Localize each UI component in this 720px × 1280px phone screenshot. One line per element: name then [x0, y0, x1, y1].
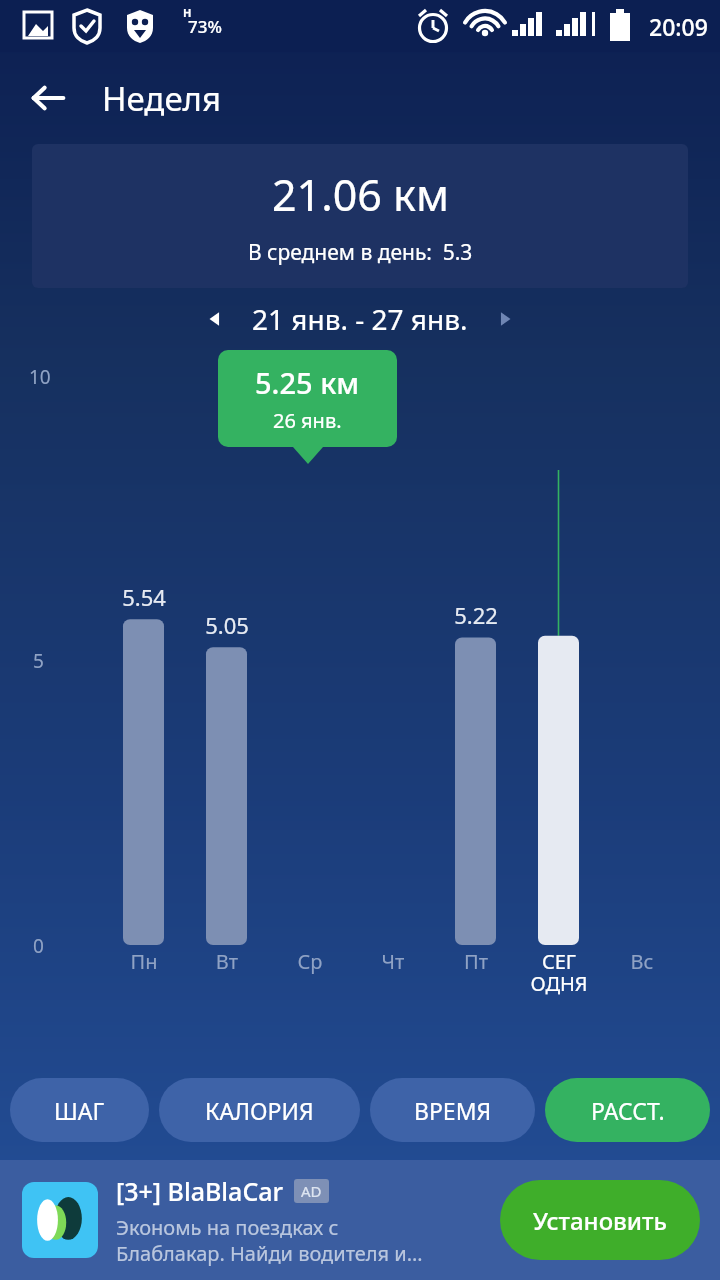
staticText: 0: [33, 933, 44, 959]
button[interactable]: ШАГ: [10, 1078, 149, 1142]
staticText: 10: [29, 364, 51, 390]
staticText: В среднем в день: 5.3: [248, 238, 473, 267]
staticText: Ср: [269, 948, 351, 975]
button[interactable]: 21.06 км: [32, 144, 688, 288]
staticText: Пт: [435, 948, 517, 975]
staticText: Пн: [103, 948, 185, 975]
staticText: Вт: [186, 948, 268, 975]
button[interactable]: 5.25 км: [218, 350, 397, 447]
staticText: 21 янв. - 27 янв.: [252, 300, 468, 338]
staticText: Вс: [601, 948, 683, 975]
staticText: 5.22: [437, 600, 515, 630]
staticText: AD: [301, 1181, 322, 1201]
staticText: 73%: [188, 15, 222, 38]
staticText: Экономь на поездках с Блаблакар. Найди в…: [116, 1214, 423, 1267]
staticText: H: [183, 5, 192, 20]
staticText: ШАГ: [54, 1095, 105, 1126]
staticText: ВРЕМЯ: [414, 1095, 492, 1126]
staticText: СЕГ ОДНЯ: [518, 948, 600, 997]
staticText: РАССТ.: [591, 1095, 665, 1126]
button[interactable]: Previous week: [190, 295, 238, 343]
button[interactable]: Back: [20, 70, 76, 126]
button[interactable]: РАССТ.: [545, 1078, 710, 1142]
button[interactable]: ВРЕМЯ: [370, 1078, 535, 1142]
button[interactable]: Next week: [482, 295, 530, 343]
button[interactable]: КАЛОРИЯ: [159, 1078, 360, 1142]
button[interactable]: Установить: [500, 1180, 700, 1260]
staticText: 20:09: [649, 11, 708, 42]
staticText: 5: [33, 648, 44, 674]
staticText: 5.25 км: [255, 363, 360, 402]
staticText: Неделя: [102, 76, 221, 121]
staticText: 21.06 км: [272, 165, 449, 224]
staticText: 5.54: [105, 582, 183, 612]
staticText: Чт: [352, 948, 434, 975]
staticText: Установить: [533, 1204, 667, 1237]
staticText: 5.05: [188, 610, 266, 640]
staticText: 26 янв.: [273, 407, 342, 434]
button[interactable]: [22, 1182, 98, 1258]
staticText: [3+] BlaBlaCar: [116, 1174, 284, 1208]
staticText: КАЛОРИЯ: [205, 1095, 314, 1126]
